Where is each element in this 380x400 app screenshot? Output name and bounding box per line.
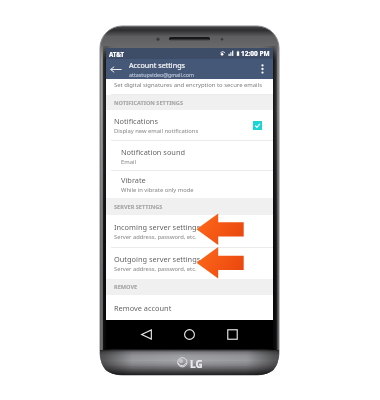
staticText: Notifications: [114, 116, 158, 126]
button[interactable]: Notifications: [106, 110, 273, 141]
staticText: Server address, password, etc.: [114, 233, 197, 241]
button[interactable]: Vibrate: [106, 171, 273, 198]
staticText: Email: [121, 158, 136, 166]
staticText: Set digital signatures and encryption to…: [114, 81, 262, 89]
button[interactable]: Home: [175, 320, 204, 349]
button[interactable]: Recent apps: [218, 320, 247, 349]
staticText: NOTIFICATION SETTINGS: [114, 99, 183, 107]
button[interactable]: Notifications toggle: [253, 121, 262, 130]
staticText: Outgoing server settings: [114, 254, 201, 264]
staticText: attastupvideo@gmail.com: [129, 71, 194, 78]
button[interactable]: Outgoing server settings: [106, 248, 273, 279]
staticText: Display new email notifications: [114, 127, 199, 135]
button[interactable]: Notification sound: [106, 141, 273, 171]
staticText: Remove account: [114, 303, 172, 313]
staticText: 12:00 PM: [241, 49, 270, 58]
button[interactable]: Incoming server settings: [106, 215, 273, 248]
button[interactable]: Navigate up: [106, 59, 126, 79]
staticText: While in vibrate only mode: [121, 186, 194, 194]
staticText: LG: [190, 357, 203, 371]
staticText: Notification sound: [121, 147, 186, 157]
staticText: AT&T: [109, 50, 125, 58]
button[interactable]: Back: [132, 320, 161, 349]
staticText: Account settings: [129, 60, 186, 70]
staticText: SERVER SETTINGS: [114, 203, 163, 211]
button[interactable]: More options: [255, 59, 270, 79]
staticText: REMOVE: [114, 283, 138, 291]
button[interactable]: Remove account: [106, 295, 273, 320]
staticText: Vibrate: [121, 175, 146, 185]
staticText: Server address, password, etc.: [114, 265, 197, 273]
staticText: Incoming server settings: [114, 222, 201, 232]
